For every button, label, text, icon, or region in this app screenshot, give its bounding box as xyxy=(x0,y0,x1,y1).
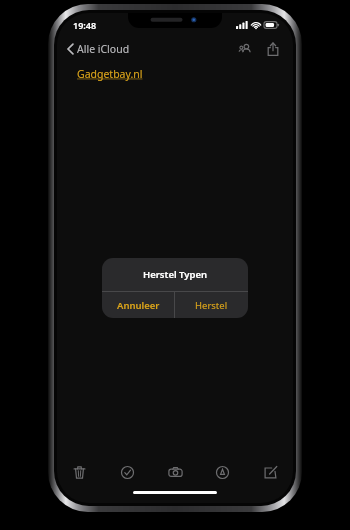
button[interactable]: Herstel xyxy=(175,292,248,318)
staticText: Alle iCloud xyxy=(77,42,130,56)
button[interactable]: Delete xyxy=(67,460,92,485)
button[interactable]: Alle iCloud xyxy=(64,39,133,59)
staticText: Herstel Typen xyxy=(143,268,208,281)
staticText: 19:48 xyxy=(73,19,97,31)
staticText: Herstel xyxy=(195,299,228,312)
button[interactable]: Markup xyxy=(210,460,235,485)
button[interactable]: Share xyxy=(263,38,283,60)
button[interactable]: Checklist xyxy=(115,460,140,485)
button[interactable]: Compose xyxy=(258,460,283,485)
button[interactable]: Camera xyxy=(163,460,188,485)
staticText: Gadgetbay.nl xyxy=(77,67,143,81)
button[interactable]: Gadgetbay.nl xyxy=(75,65,145,83)
button[interactable]: Annuleer xyxy=(102,292,174,318)
button[interactable]: Add people xyxy=(234,38,256,60)
staticText: Annuleer xyxy=(117,299,160,312)
